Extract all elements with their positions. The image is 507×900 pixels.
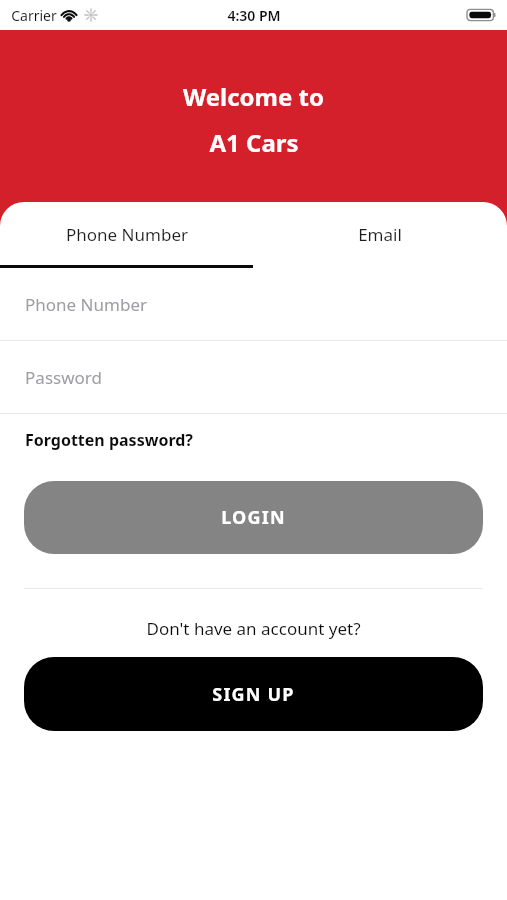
staticText: Don't have an account yet? (146, 617, 361, 640)
button[interactable]: Phone Number (0, 202, 253, 266)
button[interactable]: LOGIN (24, 481, 483, 554)
staticText: Welcome to (183, 80, 324, 113)
staticText: Phone Number (25, 293, 147, 316)
button[interactable]: Forgotten password? (0, 414, 507, 466)
other: Battery full (467, 8, 497, 22)
staticText: LOGIN (221, 505, 286, 530)
staticText: Password (25, 366, 102, 389)
button[interactable]: Password (0, 341, 507, 413)
button[interactable]: Email (253, 202, 507, 266)
button[interactable]: Phone Number (0, 268, 507, 340)
staticText: Email (358, 223, 402, 246)
staticText: 4:30 PM (227, 6, 281, 25)
button[interactable]: SIGN UP (24, 657, 483, 731)
staticText: Phone Number (66, 223, 188, 246)
staticText: SIGN UP (212, 682, 295, 707)
staticText: Forgotten password? (25, 429, 193, 451)
staticText: Carrier (11, 6, 57, 25)
staticText: A1 Cars (209, 126, 299, 159)
